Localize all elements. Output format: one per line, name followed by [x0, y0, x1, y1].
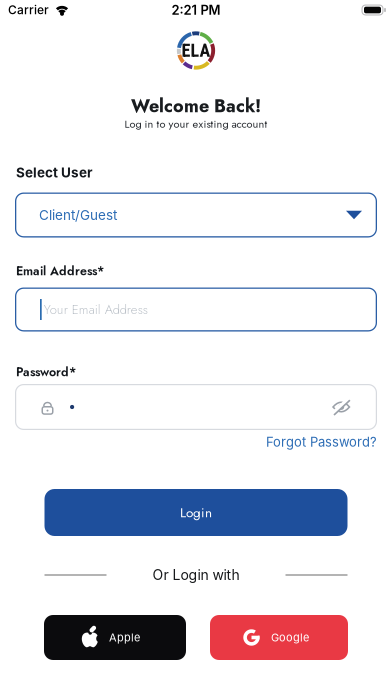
staticText: ELA — [181, 40, 210, 61]
staticText: Select User — [16, 164, 92, 181]
button[interactable]: Client/Guest — [15, 192, 377, 237]
staticText: Or Login with — [152, 566, 239, 583]
staticText: Log in to your existing account — [124, 116, 267, 132]
button[interactable] — [331, 399, 350, 415]
staticText: Login — [180, 503, 212, 522]
staticText: Your Email Address — [44, 300, 148, 319]
button[interactable]: Forgot Password? — [266, 434, 377, 450]
button[interactable]: Google — [210, 615, 348, 660]
staticText: Forgot Password? — [266, 434, 377, 450]
staticText: Welcome Back! — [131, 93, 261, 119]
button[interactable]: Apple — [44, 615, 186, 660]
staticText: Carrier — [8, 3, 49, 17]
button[interactable]: Login — [44, 489, 347, 536]
staticText: 2:21 PM — [171, 2, 220, 18]
staticText: Google — [271, 631, 309, 644]
staticText: Apple — [109, 631, 140, 644]
staticText: Client/Guest — [39, 207, 117, 223]
staticText: Password* — [16, 363, 76, 381]
staticText: Email Address* — [16, 262, 104, 280]
